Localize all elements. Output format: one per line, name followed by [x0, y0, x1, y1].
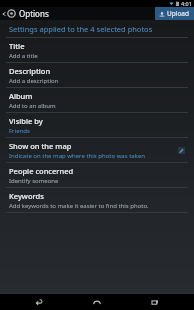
staticText: Show on the map: [9, 141, 72, 151]
staticText: Album: [9, 91, 33, 101]
staticText: Keywords: [9, 191, 44, 201]
button[interactable]: People concerned: [0, 163, 194, 188]
button[interactable]: Title: [0, 38, 194, 63]
button[interactable]: Navigate up: [0, 7, 53, 20]
button[interactable]: Upload: [155, 7, 194, 20]
button[interactable]: Album: [0, 88, 194, 113]
staticText: Upload: [167, 9, 190, 18]
staticText: Add keywords to make it easier to find t…: [9, 202, 149, 210]
button[interactable]: Recent apps: [126, 294, 184, 310]
button[interactable]: Description: [0, 63, 194, 88]
button[interactable]: Show on the map: [0, 138, 194, 163]
button[interactable]: Back: [10, 294, 68, 310]
button[interactable]: Home: [68, 294, 126, 310]
staticText: People concerned: [9, 166, 74, 176]
staticText: Add a title: [9, 52, 38, 60]
staticText: 4:01: [181, 0, 192, 7]
staticText: Add a description: [9, 77, 59, 85]
other: Navigate up: [2, 12, 6, 16]
staticText: Description: [9, 66, 51, 76]
button[interactable]: Keywords: [0, 188, 194, 213]
staticText: Visible by: [9, 116, 43, 126]
button[interactable]: Edit: [178, 147, 185, 154]
staticText: Settings applied to the 4 selected photo…: [9, 24, 153, 34]
staticText: Title: [9, 41, 25, 51]
button[interactable]: Visible by: [0, 113, 194, 138]
staticText: Indicate on the map where this photo was…: [9, 152, 145, 160]
staticText: Add to an album: [9, 102, 56, 110]
staticText: Identify someone: [9, 177, 59, 185]
staticText: Options: [19, 8, 49, 19]
staticText: Friends: [9, 127, 30, 135]
